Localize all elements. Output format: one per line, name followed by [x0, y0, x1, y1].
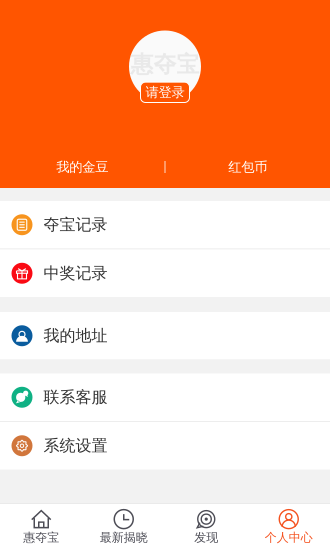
button[interactable]: 请登录: [140, 82, 189, 102]
staticText: 发现: [194, 530, 218, 545]
staticText: 惠夺宝: [130, 51, 199, 78]
staticText: 中奖记录: [43, 263, 107, 283]
staticText: 联系客服: [43, 387, 107, 407]
button[interactable]: 中奖记录: [0, 249, 330, 297]
staticText: 最新揭晓: [100, 530, 148, 545]
button[interactable]: 我的地址: [0, 312, 330, 359]
staticText: 惠夺宝: [23, 530, 59, 545]
staticText: 系统设置: [43, 436, 107, 456]
button[interactable]: 我的金豆: [0, 157, 164, 177]
button[interactable]: 惠夺宝: [0, 504, 82, 550]
staticText: 夺宝记录: [43, 215, 107, 235]
staticText: 请登录: [145, 84, 184, 100]
button[interactable]: 发现: [165, 504, 247, 550]
button[interactable]: 联系客服: [0, 373, 330, 421]
button[interactable]: 夺宝记录: [0, 201, 330, 248]
button[interactable]: 个人中心: [247, 504, 330, 550]
button[interactable]: 红包币: [165, 157, 330, 177]
button[interactable]: 最新揭晓: [82, 504, 165, 550]
staticText: 我的地址: [43, 326, 107, 346]
staticText: 红包币: [228, 159, 267, 175]
staticText: 个人中心: [265, 530, 313, 545]
button[interactable]: 系统设置: [0, 422, 330, 469]
staticText: 我的金豆: [56, 159, 108, 175]
